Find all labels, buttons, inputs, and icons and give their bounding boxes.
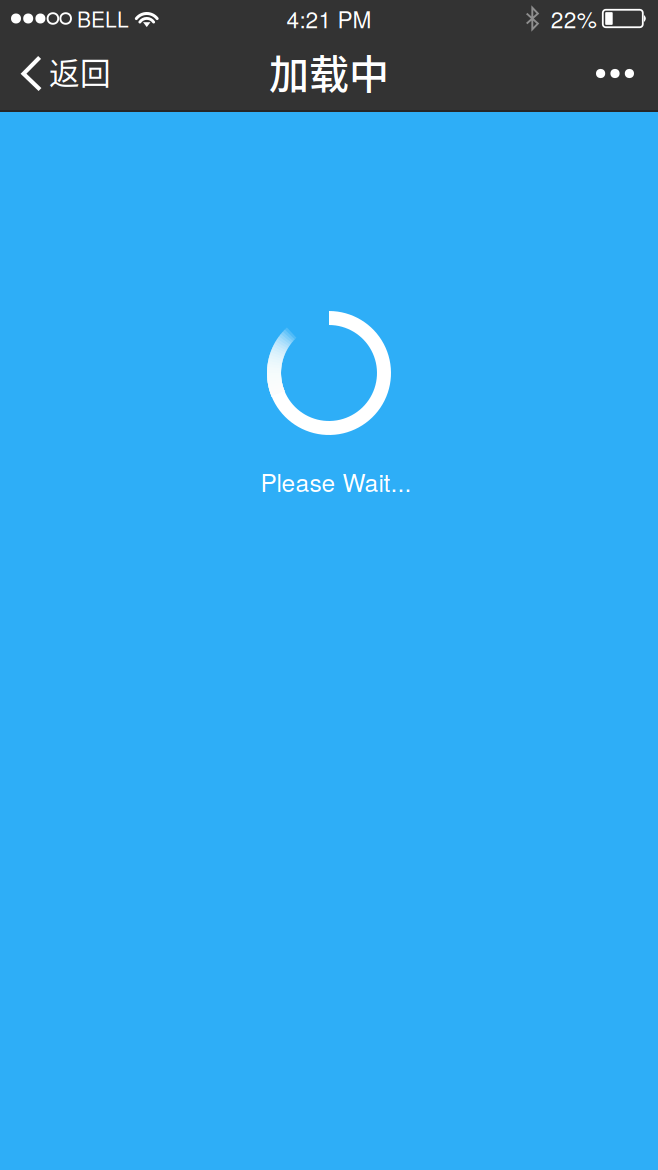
staticText: Please Wait...: [260, 464, 411, 499]
staticText: 4:21 PM: [286, 2, 371, 35]
button[interactable]: 返回: [0, 37, 127, 110]
staticText: 加载中: [269, 42, 389, 100]
button[interactable]: More options: [576, 37, 658, 110]
staticText: 22%: [551, 2, 597, 35]
staticText: BELL: [77, 3, 129, 34]
staticText: 返回: [49, 49, 111, 94]
